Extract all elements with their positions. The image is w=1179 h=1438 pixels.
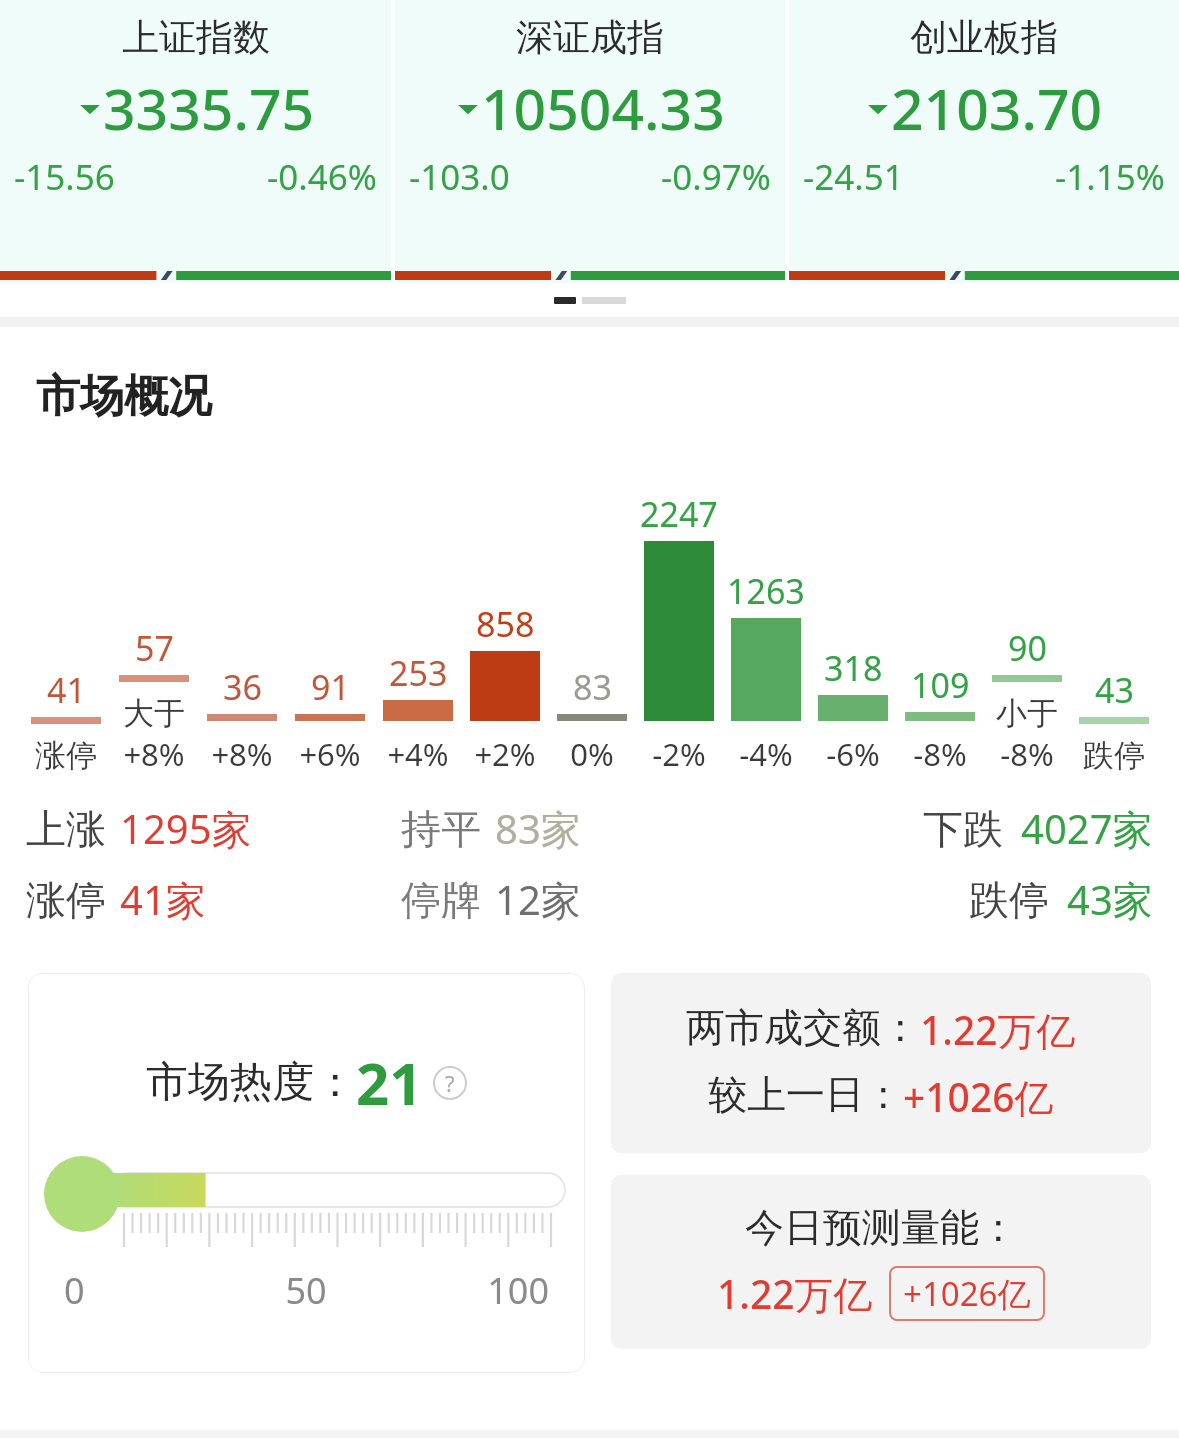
staticText: 90	[1008, 625, 1047, 671]
staticText: +6%	[299, 733, 361, 775]
staticText: 小于	[996, 694, 1058, 733]
staticText: 50	[225, 1266, 387, 1315]
button[interactable]: 83	[548, 491, 635, 775]
staticText: 1.22万亿	[920, 1003, 1076, 1056]
staticText: 3335.75	[103, 69, 315, 147]
button[interactable]: 91	[286, 491, 374, 775]
staticText: 1295家	[120, 801, 252, 856]
staticText: 跌停	[969, 875, 1049, 925]
staticText: 21	[356, 1043, 423, 1122]
staticText: 318	[824, 645, 883, 691]
staticText: 253	[389, 650, 448, 696]
staticText: 2247	[640, 491, 718, 537]
button[interactable]: 109	[896, 491, 983, 775]
staticText: 36	[223, 664, 262, 710]
staticText: 0%	[570, 733, 614, 775]
button[interactable]: 上证指数	[0, 0, 391, 283]
staticText: 1263	[727, 568, 805, 614]
staticText: 今日预测量能：	[745, 1203, 1018, 1252]
button[interactable]: 市场热度：	[28, 973, 585, 1373]
staticText: 停牌	[401, 875, 481, 925]
button[interactable]: 今日预测量能：	[611, 1175, 1151, 1349]
staticText: 83家	[495, 801, 581, 856]
staticText: +2%	[474, 733, 536, 775]
staticText: 上证指数	[122, 14, 270, 61]
button[interactable]: 858	[461, 491, 548, 775]
button[interactable]: 两市成交额：	[611, 973, 1151, 1153]
staticText: 41	[47, 667, 86, 713]
staticText: 43	[1095, 667, 1134, 713]
staticText: +4%	[387, 733, 449, 775]
staticText: +8%	[123, 733, 185, 775]
staticText: 持平	[401, 804, 481, 854]
staticText: 10504.33	[481, 69, 725, 147]
staticText: -8%	[913, 733, 967, 775]
staticText: 涨停	[35, 736, 97, 775]
staticText: 大于	[123, 694, 185, 733]
button[interactable]: 说明	[433, 1066, 467, 1100]
staticText: ?	[445, 1068, 455, 1098]
staticText: 上涨	[26, 804, 106, 854]
button[interactable]: 创业板指	[789, 0, 1179, 283]
button[interactable]: 318	[809, 491, 896, 775]
staticText: 市场概况	[36, 369, 212, 424]
staticText: -0.97%	[661, 153, 771, 201]
staticText: -1.15%	[1055, 153, 1165, 201]
staticText: -4%	[739, 733, 793, 775]
staticText: 4027家	[1021, 801, 1153, 856]
button[interactable]: 41	[22, 494, 110, 775]
staticText: 83	[573, 664, 612, 710]
staticText: 2103.70	[891, 69, 1103, 147]
staticText: -8%	[1000, 733, 1054, 775]
staticText: 两市成交额：	[686, 1003, 920, 1052]
staticText: +1026亿	[903, 1271, 1031, 1316]
staticText: +8%	[211, 733, 273, 775]
button[interactable]: 36	[198, 491, 286, 775]
button[interactable]: 深证成指	[395, 0, 785, 283]
staticText: 创业板指	[910, 14, 1058, 61]
button[interactable]: 90	[983, 452, 1070, 775]
staticText: -24.51	[803, 153, 904, 201]
staticText: 41家	[120, 872, 206, 927]
staticText: 深证成指	[516, 14, 664, 61]
staticText: 涨停	[26, 875, 106, 925]
staticText: 12家	[495, 872, 581, 927]
button[interactable]: 2247	[635, 491, 722, 775]
staticText: 下跌	[923, 804, 1003, 854]
staticText: -15.56	[14, 153, 115, 201]
staticText: -2%	[652, 733, 706, 775]
staticText: 43家	[1067, 872, 1153, 927]
staticText: 57	[135, 625, 174, 671]
staticText: -0.46%	[267, 153, 377, 201]
button[interactable]: 57	[110, 452, 198, 775]
staticText: 0	[64, 1266, 225, 1315]
staticText: 100	[387, 1266, 549, 1315]
staticText: +1026亿	[903, 1070, 1054, 1123]
staticText: 109	[911, 662, 970, 708]
staticText: 91	[311, 664, 350, 710]
staticText: 1.22万亿	[717, 1267, 873, 1320]
button[interactable]: 253	[374, 491, 461, 775]
button[interactable]: 43	[1070, 494, 1157, 775]
staticText: 市场热度：	[146, 1056, 356, 1109]
staticText: -103.0	[409, 153, 510, 201]
staticText: 跌停	[1083, 736, 1145, 775]
staticText: -6%	[826, 733, 880, 775]
staticText: 858	[476, 601, 535, 647]
staticText: 较上一日：	[708, 1070, 903, 1119]
button[interactable]: 1263	[722, 491, 809, 775]
